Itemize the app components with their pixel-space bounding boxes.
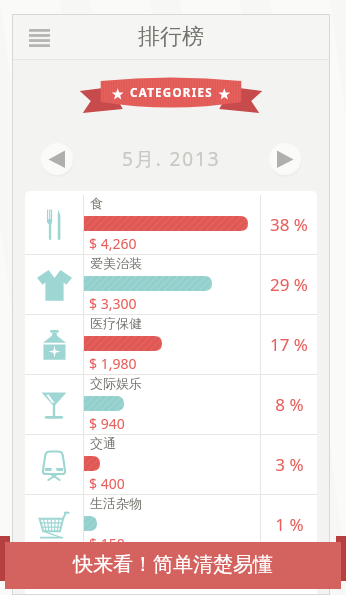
staticText: 爱美治装	[90, 255, 142, 271]
staticText: 医疗保健	[90, 315, 142, 331]
button[interactable]: 交通	[25, 435, 317, 494]
staticText: 38 %	[270, 213, 308, 236]
button[interactable]: Previous month	[40, 142, 74, 176]
staticText: 8 %	[275, 393, 304, 416]
staticText: 29 %	[270, 273, 308, 296]
staticText: CATEGORIES	[130, 85, 213, 101]
staticText: 17 %	[270, 333, 308, 356]
button[interactable]: 爱美治装	[25, 255, 317, 314]
staticText: $ 1,980	[89, 354, 137, 373]
staticText: 快来看！简单清楚易懂	[73, 552, 273, 577]
staticText: 3 %	[275, 453, 304, 476]
button[interactable]: 医疗保健	[25, 315, 317, 374]
staticText: 食	[90, 195, 103, 211]
staticText: 交际娱乐	[90, 375, 142, 391]
staticText: $ 4,260	[89, 234, 137, 253]
button[interactable]: Next month	[268, 142, 302, 176]
button[interactable]: Menu	[22, 21, 56, 55]
staticText: $ 940	[89, 414, 125, 433]
staticText: $ 150	[89, 534, 125, 553]
staticText: 1 %	[275, 513, 304, 536]
button[interactable]: 生活杂物	[25, 495, 317, 554]
staticText: $ 3,300	[89, 294, 137, 313]
staticText: 交通	[90, 435, 116, 451]
staticText: 生活杂物	[90, 495, 142, 511]
staticText: 排行榜	[138, 23, 204, 51]
staticText: $ 400	[89, 474, 125, 493]
button[interactable]: 食	[25, 195, 317, 254]
button[interactable]: 交际娱乐	[25, 375, 317, 434]
staticText: 5月. 2013	[122, 146, 221, 172]
